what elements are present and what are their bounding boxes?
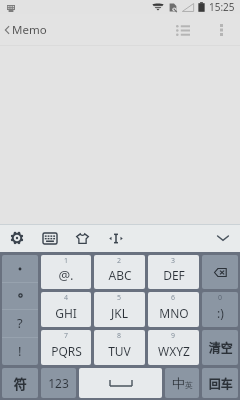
button[interactable]: More options bbox=[202, 14, 240, 46]
staticText: 英 bbox=[185, 380, 193, 390]
button[interactable]: Hide keyboard bbox=[206, 224, 240, 252]
button[interactable]: 7 bbox=[41, 330, 91, 365]
button[interactable]: 123 bbox=[41, 368, 76, 398]
button[interactable]: Move cursor bbox=[99, 224, 132, 252]
staticText: 2 bbox=[117, 256, 122, 266]
button[interactable]: 8 bbox=[94, 330, 145, 365]
staticText: ? bbox=[17, 314, 23, 332]
button[interactable]: 9 bbox=[148, 330, 199, 365]
button[interactable]: Settings bbox=[0, 224, 33, 252]
staticText: WXYZ bbox=[158, 343, 190, 359]
staticText: ! bbox=[18, 342, 22, 360]
button[interactable]: 4 bbox=[41, 292, 91, 327]
button[interactable]: List view bbox=[164, 14, 202, 46]
button[interactable]: Switch keyboard bbox=[33, 224, 66, 252]
staticText: 中 bbox=[172, 375, 185, 391]
button[interactable]: 符 bbox=[2, 368, 38, 398]
staticText: 0 bbox=[218, 293, 223, 303]
button[interactable]: Space bbox=[79, 368, 162, 398]
staticText: GHI bbox=[55, 305, 77, 321]
button[interactable]: 1 bbox=[41, 255, 91, 289]
staticText: TUV bbox=[108, 343, 131, 359]
button[interactable]: 6 bbox=[148, 292, 199, 327]
staticText: 4 bbox=[64, 293, 69, 303]
staticText: 15:25 bbox=[209, 0, 235, 14]
button[interactable]: 3 bbox=[148, 255, 199, 289]
button[interactable]: 回车 bbox=[202, 368, 238, 398]
staticText: 8 bbox=[117, 331, 122, 341]
staticText: DEF bbox=[163, 267, 185, 283]
staticText: 5 bbox=[117, 293, 122, 303]
button[interactable]: 0 bbox=[202, 292, 238, 327]
staticText: PQRS bbox=[51, 343, 82, 359]
staticText: 9 bbox=[171, 331, 176, 341]
staticText: 清空 bbox=[208, 339, 233, 356]
staticText: :) bbox=[217, 305, 224, 321]
staticText: 123 bbox=[48, 375, 69, 391]
button[interactable]: Middle dot bbox=[2, 255, 38, 282]
button[interactable]: 2 bbox=[94, 255, 145, 289]
staticText: 符 bbox=[13, 374, 27, 393]
staticText: 7 bbox=[64, 331, 69, 341]
staticText: 3 bbox=[171, 256, 176, 266]
staticText: 回车 bbox=[208, 375, 233, 392]
staticText: Memo bbox=[12, 22, 47, 38]
button[interactable]: 5 bbox=[94, 292, 145, 327]
staticText: ABC bbox=[108, 267, 132, 283]
staticText: 1 bbox=[64, 256, 69, 266]
button[interactable]: Memo bbox=[0, 14, 55, 46]
button[interactable]: Exclamation mark bbox=[2, 337, 38, 365]
button[interactable]: 清空 bbox=[202, 330, 238, 365]
staticText: 6 bbox=[171, 293, 176, 303]
button[interactable]: Full stop bbox=[2, 282, 38, 309]
button[interactable]: Theme bbox=[66, 224, 99, 252]
staticText: JKL bbox=[111, 305, 128, 321]
button[interactable]: Question mark bbox=[2, 309, 38, 337]
staticText: MNO bbox=[159, 305, 189, 321]
staticText: @. bbox=[58, 266, 74, 284]
button[interactable]: 中 bbox=[165, 368, 199, 398]
button[interactable]: Backspace bbox=[202, 255, 238, 289]
